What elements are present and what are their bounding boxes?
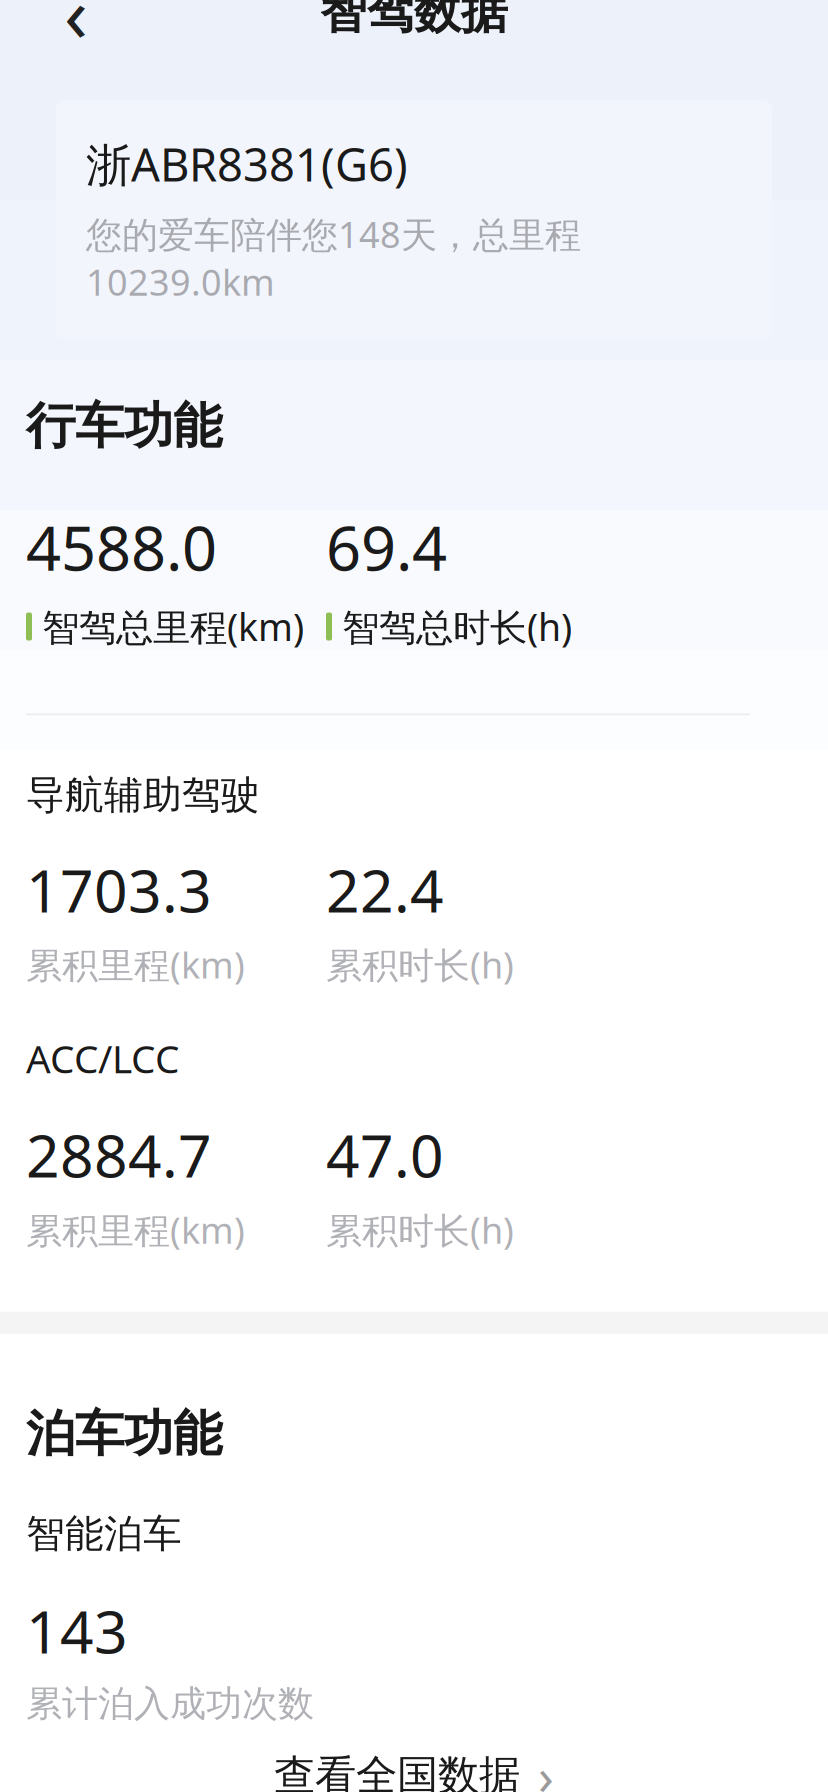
staticText: 智能泊车 bbox=[26, 1510, 182, 1558]
button[interactable]: 查看全国数据 bbox=[234, 1726, 594, 1792]
staticText: ‹ bbox=[64, 0, 88, 63]
staticText: › bbox=[538, 1742, 554, 1792]
staticText: 143 bbox=[26, 1592, 128, 1670]
button[interactable]: Back bbox=[32, 0, 120, 56]
staticText: 查看全国数据 bbox=[274, 1750, 520, 1792]
staticText: 4588.0 bbox=[26, 506, 217, 588]
staticText: 累积时长(h) bbox=[326, 941, 514, 988]
staticText: 累积里程(km) bbox=[26, 1206, 245, 1254]
staticText: 22.4 bbox=[326, 851, 444, 929]
staticText: 智驾总里程(km) bbox=[42, 602, 304, 651]
staticText: 累积里程(km) bbox=[26, 941, 245, 988]
staticText: 您的爱车陪伴您148天，总里程10239.0km bbox=[86, 210, 581, 306]
staticText: ACC/LCC bbox=[26, 1032, 179, 1084]
staticText: 泊车功能 bbox=[26, 1404, 222, 1464]
staticText: 智驾数据 bbox=[320, 0, 508, 40]
staticText: 47.0 bbox=[326, 1116, 444, 1194]
staticText: 1703.3 bbox=[26, 851, 212, 929]
staticText: 行车功能 bbox=[26, 396, 222, 456]
staticText: 智驾总时长(h) bbox=[342, 602, 572, 651]
staticText: 浙ABR8381(G6) bbox=[86, 134, 408, 194]
staticText: 2884.7 bbox=[26, 1116, 212, 1194]
staticText: 累积时长(h) bbox=[326, 1206, 514, 1254]
staticText: 69.4 bbox=[326, 506, 447, 588]
staticText: 导航辅助驾驶 bbox=[26, 771, 260, 819]
staticText: 累计泊入成功次数 bbox=[26, 1682, 314, 1726]
